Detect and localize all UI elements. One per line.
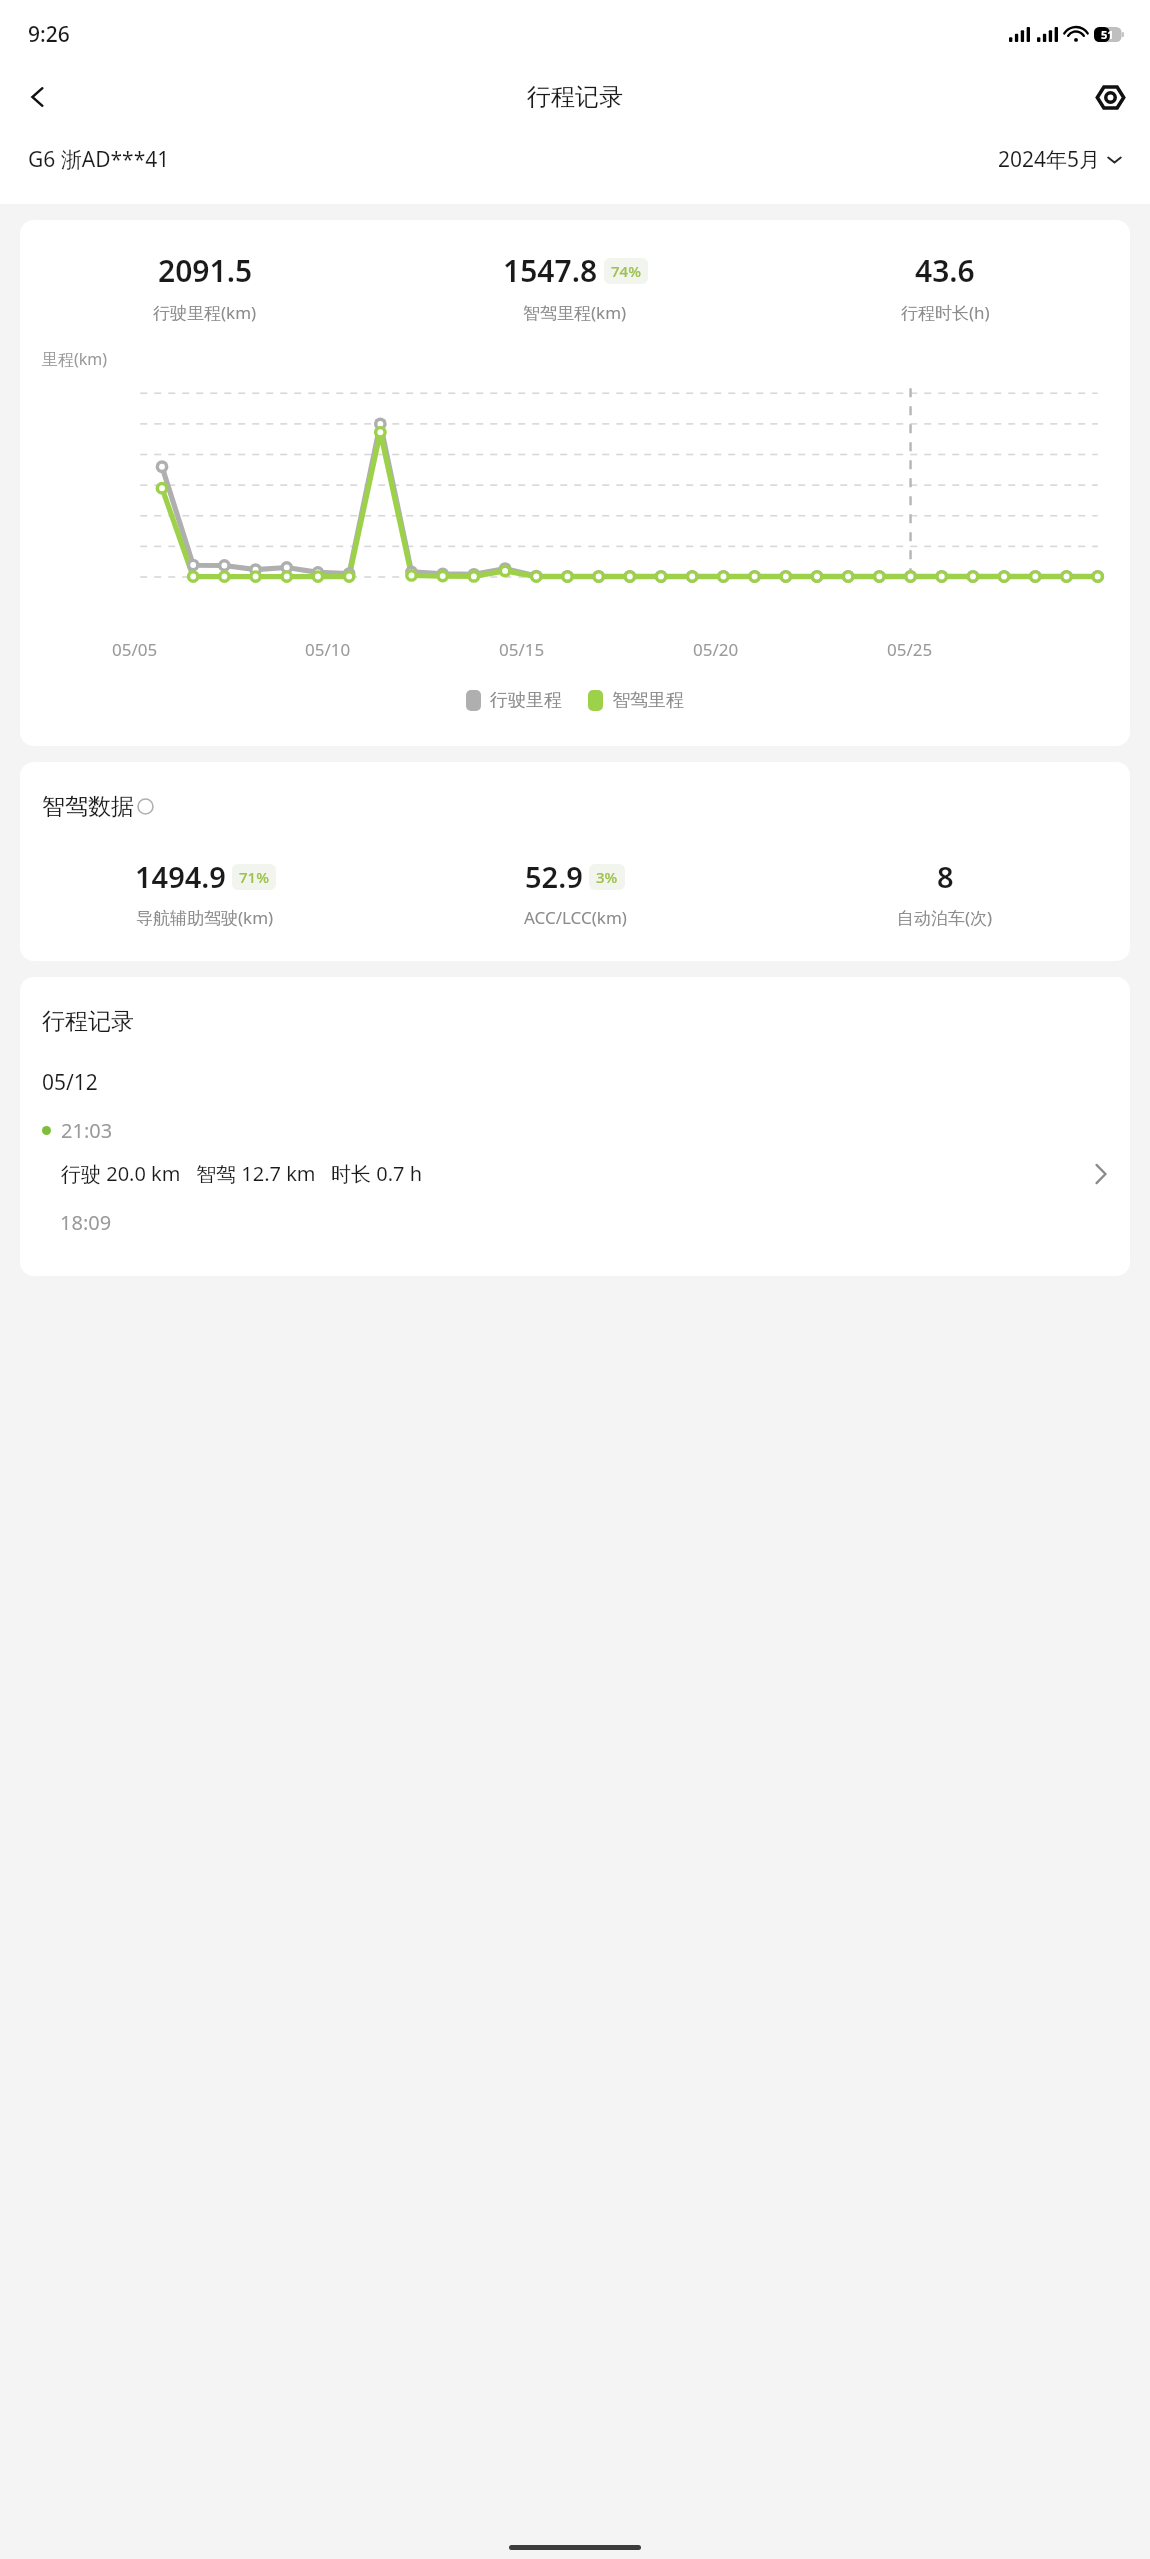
- staticText: 05/20: [693, 638, 739, 661]
- staticText: 3%: [596, 867, 618, 887]
- staticText: 行驶里程: [490, 689, 562, 712]
- staticText: 21:03: [61, 1117, 113, 1144]
- staticText: 8: [937, 857, 954, 896]
- staticText: 行程记录: [527, 82, 623, 112]
- staticText: 智驾里程: [612, 689, 684, 712]
- staticText: 52.9: [525, 857, 583, 896]
- staticText: 9:26: [28, 20, 70, 49]
- staticText: 智驾数据: [42, 792, 134, 821]
- staticText: 1494.9: [135, 857, 226, 896]
- staticText: 05/10: [305, 638, 351, 661]
- button[interactable]: Back: [10, 69, 66, 125]
- staticText: 里程(km): [42, 348, 108, 370]
- staticText: 05/12: [42, 1068, 98, 1097]
- staticText: 05/05: [112, 638, 158, 661]
- staticText: 18:09: [60, 1209, 112, 1236]
- staticText: 行驶 20.0 km 智驾 12.7 km 时长 0.7 h: [61, 1160, 423, 1187]
- button[interactable]: 2024年5月: [998, 145, 1122, 174]
- staticText: 行程记录: [42, 1007, 134, 1036]
- staticText: 74%: [611, 261, 641, 281]
- staticText: 行程时长(h): [901, 301, 990, 324]
- staticText: 05/15: [499, 638, 545, 661]
- staticText: 2091.5: [158, 250, 253, 291]
- staticText: 51: [1101, 27, 1114, 42]
- staticText: 2024年5月: [998, 145, 1101, 174]
- staticText: 1547.8: [503, 250, 598, 291]
- button[interactable]: 智驾数据: [42, 792, 154, 821]
- staticText: G6 浙AD***41: [28, 145, 170, 174]
- staticText: 自动泊车(次): [897, 906, 993, 929]
- staticText: 导航辅助驾驶(km): [136, 906, 274, 929]
- staticText: 43.6: [915, 250, 975, 291]
- button[interactable]: 21:03: [20, 1117, 1130, 1187]
- staticText: ACC/LCC(km): [524, 906, 627, 929]
- staticText: 行驶里程(km): [153, 301, 257, 324]
- staticText: 05/25: [887, 638, 933, 661]
- staticText: 71%: [239, 867, 269, 887]
- button[interactable]: G6 浙AD***41: [28, 145, 170, 174]
- staticText: 智驾里程(km): [523, 301, 627, 324]
- button[interactable]: Settings: [1082, 69, 1138, 125]
